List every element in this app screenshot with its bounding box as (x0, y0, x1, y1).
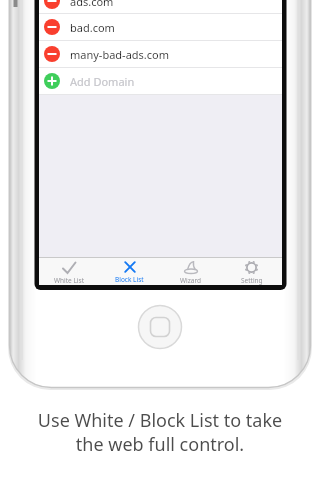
button[interactable]: Add Domain (39, 68, 282, 94)
staticText: many-bad-ads.com (70, 47, 170, 62)
button[interactable]: Wizard (160, 261, 221, 285)
button[interactable]: White List (39, 261, 99, 285)
staticText: White List (54, 276, 84, 285)
staticText: Use White / Block List to take (0, 408, 320, 433)
button[interactable]: many-bad-ads.com (39, 41, 282, 67)
staticText: Block List (115, 275, 144, 284)
staticText: Wizard (180, 276, 201, 285)
staticText: ads.com (70, 0, 114, 9)
button[interactable]: Block List (99, 261, 160, 284)
button[interactable]: Setting (221, 261, 282, 285)
staticText: Add Domain (70, 74, 135, 89)
staticText: Setting (241, 276, 263, 285)
staticText: the web full control. (0, 432, 320, 457)
staticText: bad.com (70, 20, 115, 35)
button[interactable]: bad.com (39, 14, 282, 40)
